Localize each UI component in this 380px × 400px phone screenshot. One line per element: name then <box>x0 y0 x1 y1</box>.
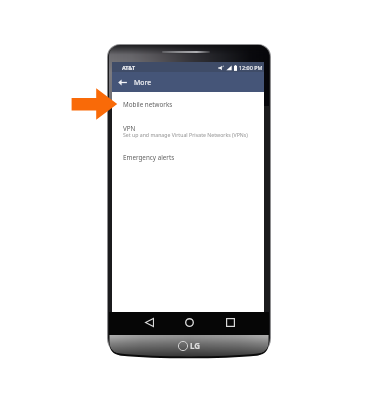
staticText: More <box>134 78 152 87</box>
button[interactable]: Recent apps <box>220 311 241 334</box>
staticText: VPN <box>123 124 136 133</box>
staticText: Emergency alerts <box>123 153 175 162</box>
button[interactable]: VPN <box>112 114 264 140</box>
staticText: LG <box>190 340 201 351</box>
staticText: Set up and manage Virtual Private Networ… <box>123 131 248 138</box>
button[interactable]: Navigate up <box>112 72 133 92</box>
button[interactable]: Home <box>179 311 200 334</box>
staticText: AT&T <box>122 64 136 71</box>
staticText: Mobile networks <box>123 100 173 109</box>
button[interactable]: Back <box>139 311 160 334</box>
button[interactable]: Emergency alerts <box>112 140 264 162</box>
button[interactable]: Mobile networks <box>112 92 264 114</box>
staticText: 12:00 PM <box>239 64 263 71</box>
